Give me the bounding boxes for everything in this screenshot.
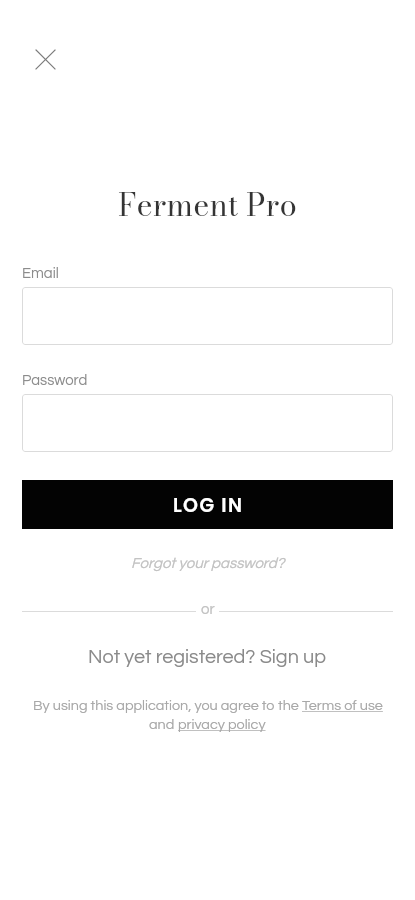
- button[interactable]: [22, 287, 393, 345]
- button[interactable]: LOG IN: [22, 480, 393, 529]
- button[interactable]: Not yet registered? Sign up: [88, 647, 327, 667]
- button[interactable]: privacy policy: [178, 717, 266, 732]
- staticText: Email: [22, 266, 59, 281]
- button[interactable]: Terms of use: [302, 698, 383, 713]
- staticText: By using this application, you agree to …: [33, 698, 302, 713]
- staticText: LOG IN: [173, 492, 244, 519]
- button[interactable]: [22, 394, 393, 452]
- staticText: Password: [22, 373, 88, 388]
- button[interactable]: Close: [23, 37, 68, 82]
- button[interactable]: Forgot your password?: [131, 556, 285, 571]
- staticText: Ferment Pro: [0, 181, 415, 228]
- staticText: or: [201, 602, 215, 617]
- staticText: and: [149, 717, 178, 732]
